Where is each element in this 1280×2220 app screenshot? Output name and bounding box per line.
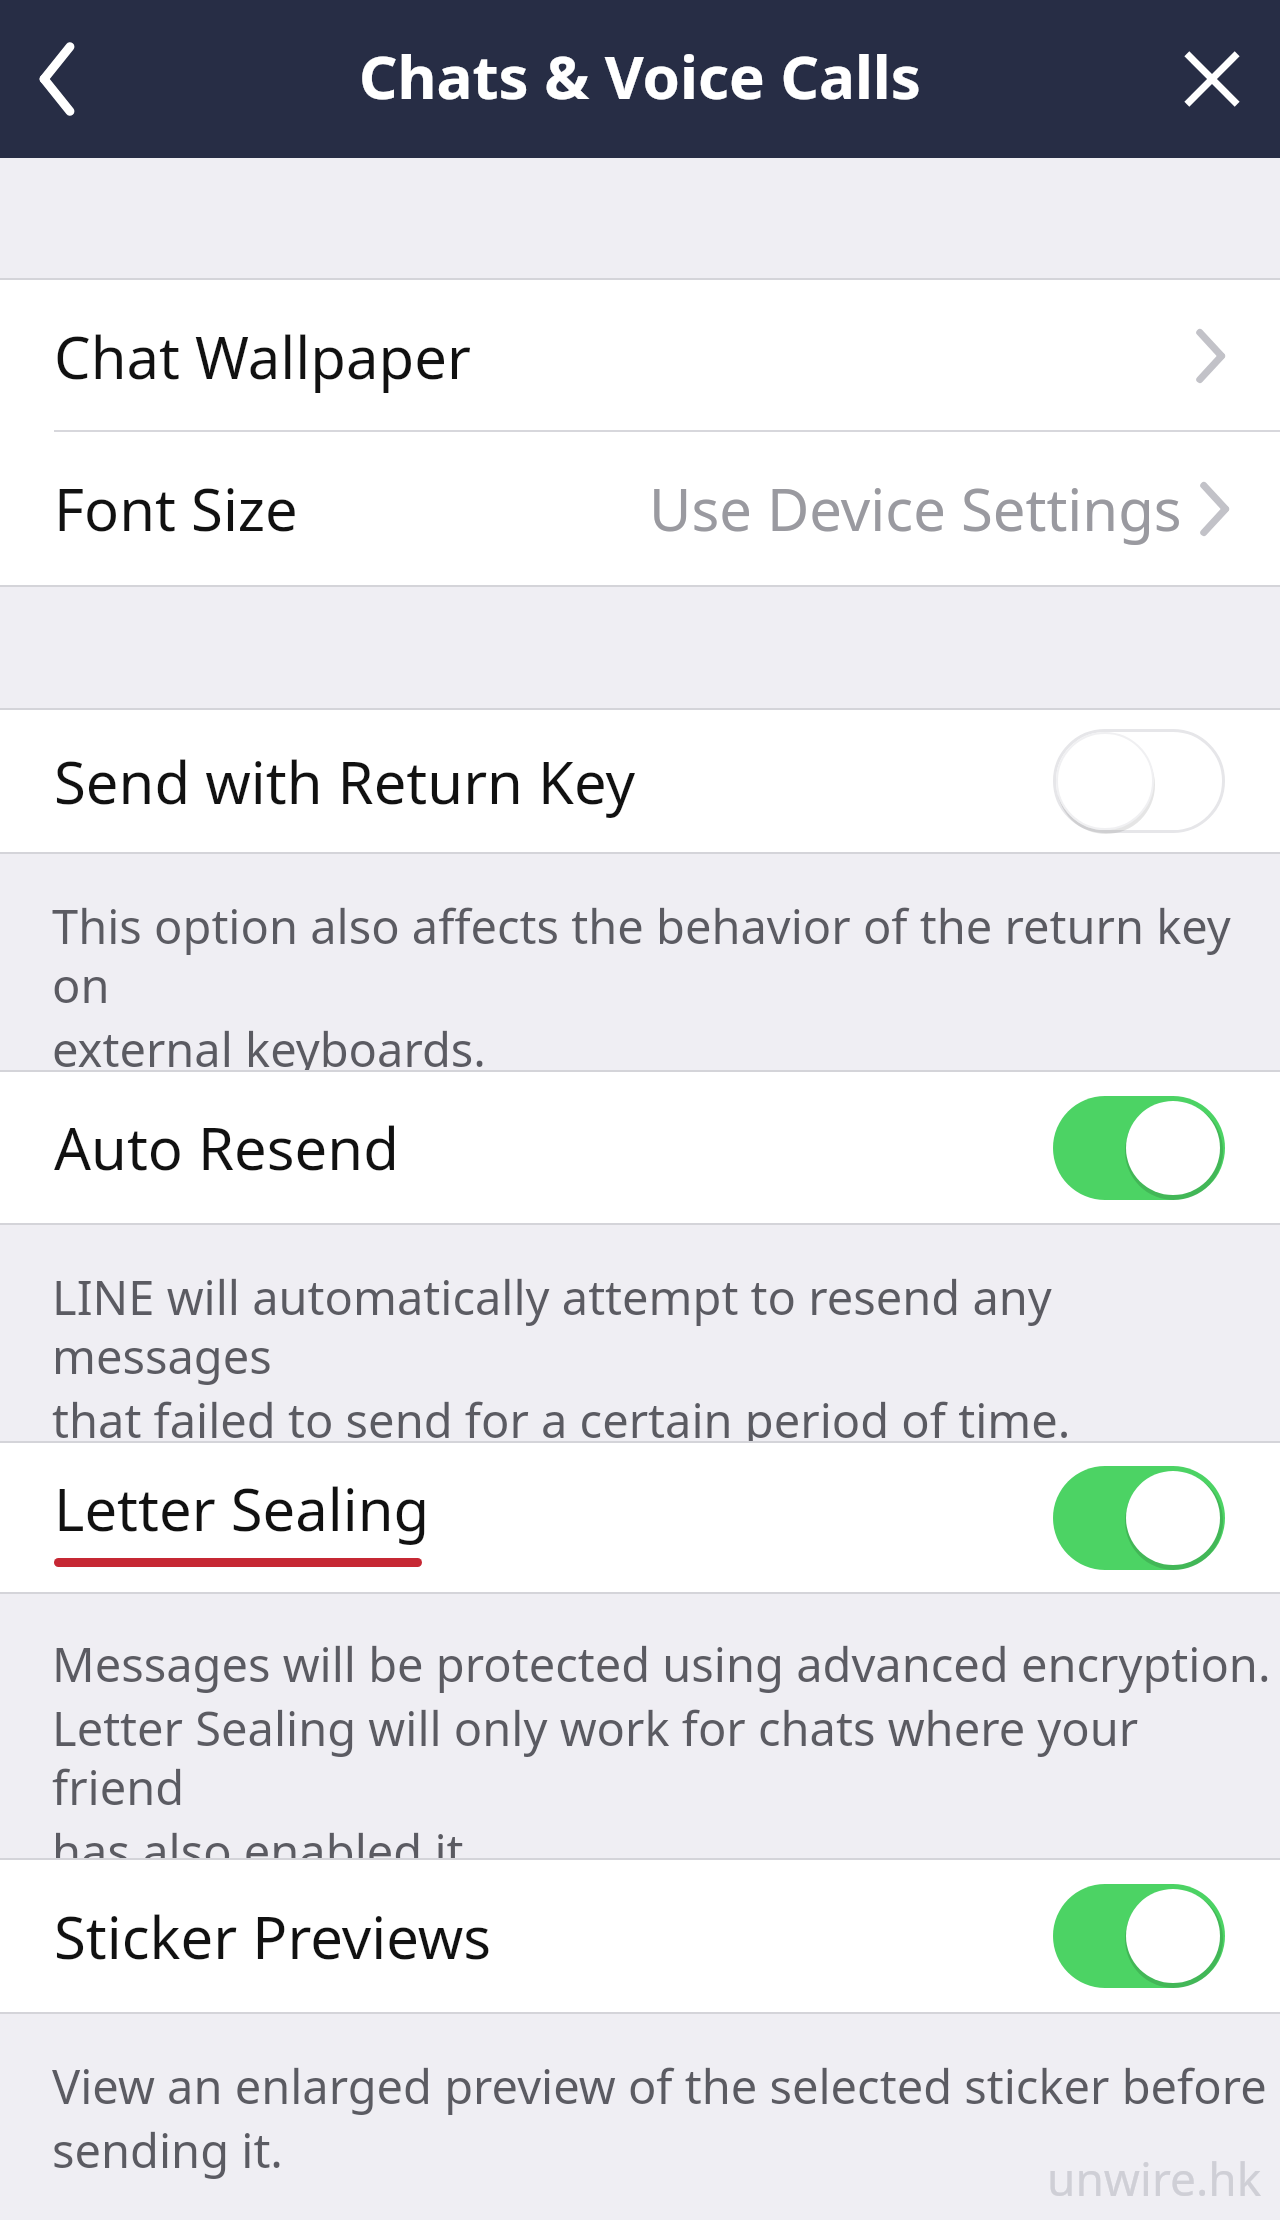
staticText: View an enlarged preview of the selected…: [52, 2054, 1267, 2118]
button[interactable]: Letter Sealing: [0, 1443, 1280, 1592]
button[interactable]: Toggle off: [1053, 729, 1225, 833]
staticText: Font Size: [54, 469, 298, 548]
staticText: Messages will be protected using advance…: [52, 1632, 1271, 1696]
button[interactable]: Auto Resend: [0, 1072, 1280, 1223]
button[interactable]: Sticker Previews: [0, 1860, 1280, 2012]
staticText: Sticker Previews: [54, 1897, 492, 1976]
staticText: Chat Wallpaper: [54, 317, 471, 396]
staticText: Letter Sealing: [54, 1469, 430, 1548]
staticText: Chats & Voice Calls: [359, 35, 921, 117]
button[interactable]: Font Size: [0, 432, 1280, 585]
button[interactable]: Close: [1162, 19, 1262, 139]
staticText: LINE will automatically attempt to resen…: [52, 1265, 1280, 1388]
staticText: that failed to send for a certain period…: [52, 1388, 1071, 1443]
staticText: This option also affects the behavior of…: [52, 894, 1280, 1017]
staticText: external keyboards.: [52, 1017, 486, 1072]
button[interactable]: Chat Wallpaper: [0, 280, 1280, 432]
staticText: Use Device Settings: [649, 469, 1182, 548]
staticText: Auto Resend: [54, 1108, 399, 1187]
staticText: unwire.hk: [1047, 2147, 1262, 2210]
button[interactable]: Toggle on: [1053, 1096, 1225, 1200]
button[interactable]: Toggle on: [1053, 1884, 1225, 1988]
staticText: Letter Sealing will only work for chats …: [52, 1696, 1280, 1819]
button[interactable]: Back: [8, 14, 106, 144]
button[interactable]: Toggle on: [1053, 1466, 1225, 1570]
staticText: sending it.: [52, 2118, 283, 2182]
staticText: Send with Return Key: [54, 742, 636, 821]
button[interactable]: Send with Return Key: [0, 710, 1280, 852]
staticText: has also enabled it.: [52, 1819, 477, 1860]
